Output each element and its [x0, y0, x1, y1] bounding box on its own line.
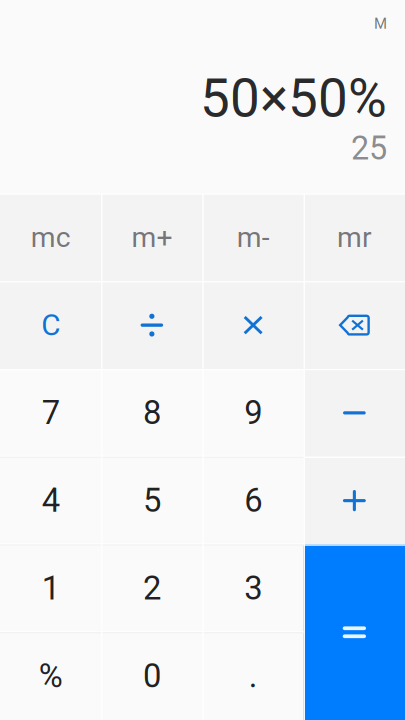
- staticText: 0: [143, 657, 161, 695]
- button[interactable]: 5: [101, 457, 202, 545]
- button[interactable]: %: [0, 632, 101, 720]
- button[interactable]: m+: [101, 193, 202, 281]
- button[interactable]: C: [0, 281, 101, 369]
- staticText: 25: [351, 129, 387, 167]
- button[interactable]: 4: [0, 457, 101, 545]
- button[interactable]: 6: [202, 457, 304, 545]
- staticText: 7: [42, 394, 60, 432]
- button[interactable]: mr: [304, 193, 405, 281]
- button[interactable]: 3: [202, 544, 304, 632]
- staticText: 3: [244, 569, 262, 608]
- staticText: 50×50%: [200, 67, 387, 129]
- button[interactable]: 2: [101, 544, 202, 632]
- button[interactable]: Backspace: [304, 281, 405, 369]
- button[interactable]: 9: [202, 369, 304, 457]
- staticText: m-: [237, 221, 270, 254]
- button[interactable]: 1: [0, 544, 101, 632]
- staticText: 4: [42, 481, 60, 520]
- button[interactable]: Plus: [304, 457, 405, 545]
- button[interactable]: Divide: [101, 281, 202, 369]
- staticText: .: [249, 657, 258, 695]
- staticText: m+: [131, 221, 172, 254]
- button[interactable]: .: [202, 632, 304, 720]
- staticText: %: [39, 657, 63, 695]
- staticText: 6: [244, 481, 262, 520]
- staticText: 1: [42, 569, 60, 608]
- button[interactable]: m-: [202, 193, 304, 281]
- button[interactable]: Equals: [304, 544, 405, 720]
- button[interactable]: Minus: [304, 369, 405, 457]
- staticText: 8: [143, 394, 161, 432]
- staticText: mr: [337, 221, 372, 254]
- staticText: C: [41, 308, 60, 342]
- staticText: 9: [244, 394, 262, 432]
- staticText: mc: [31, 221, 71, 254]
- button[interactable]: mc: [0, 193, 101, 281]
- staticText: 2: [143, 569, 161, 608]
- button[interactable]: Multiply: [202, 281, 304, 369]
- staticText: 5: [143, 481, 161, 520]
- button[interactable]: 0: [101, 632, 202, 720]
- button[interactable]: 8: [101, 369, 202, 457]
- button[interactable]: 7: [0, 369, 101, 457]
- staticText: M: [374, 15, 387, 32]
